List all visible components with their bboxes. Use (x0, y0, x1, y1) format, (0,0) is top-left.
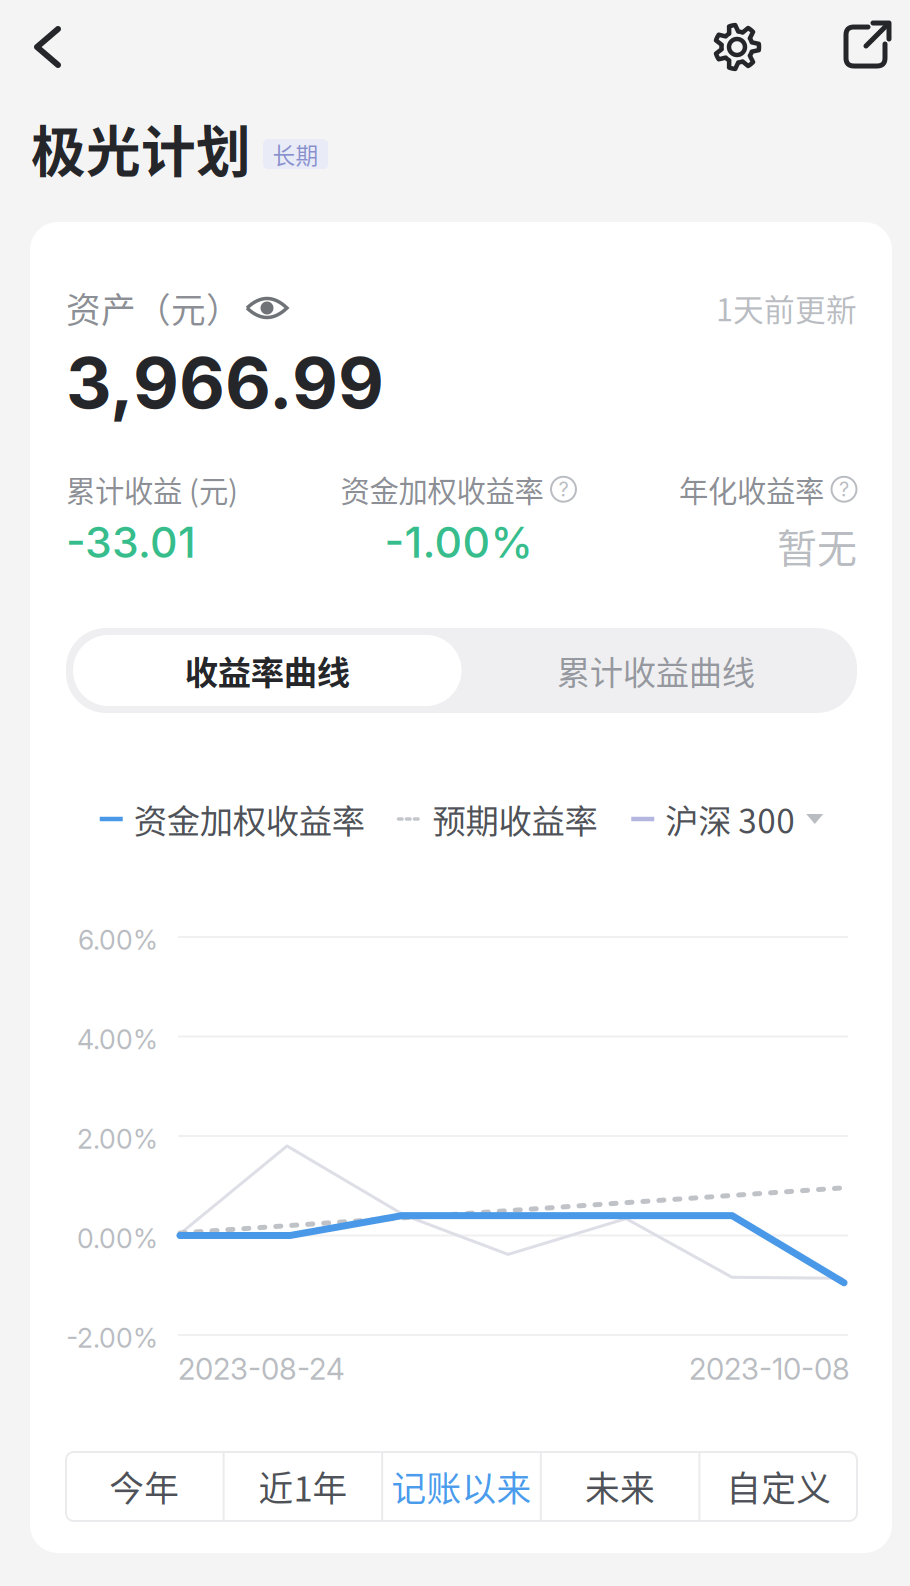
staticText: 资金加权收益率 (134, 795, 365, 843)
staticText: -33.01 (66, 516, 196, 568)
staticText: 2023-10-08 (689, 1351, 850, 1387)
staticText: 记账以来 (391, 1461, 531, 1512)
staticText: 近1年 (258, 1461, 347, 1512)
button[interactable]: 自定义 (700, 1452, 857, 1521)
button[interactable]: Settings (709, 19, 765, 75)
staticText: 自定义 (726, 1461, 831, 1512)
staticText: 沪深 300 (665, 795, 795, 843)
staticText: 4.00% (77, 1023, 158, 1056)
button[interactable]: 收益率曲线 (73, 635, 461, 706)
staticText: 2023-08-24 (178, 1351, 345, 1387)
staticText: 累计收益 (元) (66, 468, 238, 510)
button[interactable]: 未来 (542, 1452, 698, 1521)
staticText: 累计收益曲线 (557, 646, 755, 695)
button[interactable]: Back (18, 11, 82, 83)
staticText: ? (558, 477, 568, 501)
staticText: -1.00% (384, 516, 532, 568)
staticText: 6.00% (78, 924, 158, 956)
staticText: 今年 (109, 1461, 179, 1512)
staticText: -2.00% (66, 1322, 158, 1354)
button[interactable]: 今年 (66, 1452, 223, 1521)
button[interactable]: Share (838, 18, 896, 76)
staticText: 收益率曲线 (185, 646, 350, 695)
staticText: 0.00% (77, 1222, 158, 1255)
button[interactable]: Toggle balance visibility (241, 291, 293, 325)
button[interactable]: 近1年 (225, 1452, 381, 1521)
button[interactable]: 记账以来 (383, 1452, 540, 1521)
staticText: 2.00% (77, 1123, 158, 1155)
staticText: ? (839, 477, 849, 501)
button[interactable]: 累计收益曲线 (461, 635, 850, 706)
staticText: 未来 (585, 1461, 655, 1512)
staticText: 年化收益率 (679, 468, 824, 510)
staticText: 暂无 (777, 516, 857, 574)
button[interactable]: 沪深 300 (631, 795, 823, 843)
staticText: 资金加权收益率 (340, 468, 543, 510)
staticText: 1天前更新 (716, 286, 857, 330)
staticText: 预期收益率 (432, 795, 597, 843)
staticText: 长期 (272, 138, 318, 170)
staticText: 资产（元） (66, 283, 241, 333)
staticText: 极光计划 (31, 108, 251, 187)
staticText: 3,966.99 (66, 340, 384, 425)
